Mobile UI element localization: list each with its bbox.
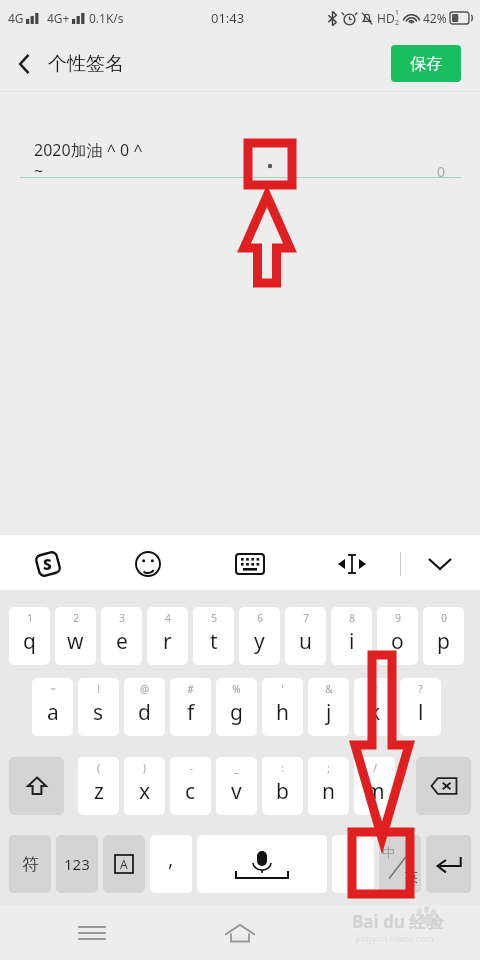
- staticText: 2: [395, 18, 400, 28]
- staticText: 0: [437, 162, 446, 181]
- button[interactable]: ': [262, 678, 303, 736]
- button[interactable]: 4: [147, 607, 188, 665]
- staticText: 1: [395, 8, 400, 18]
- staticText: /: [373, 761, 377, 775]
- button[interactable]: Chinese English toggle: [379, 835, 421, 893]
- button[interactable]: Sogou input: [30, 546, 66, 582]
- staticText: d: [138, 698, 151, 727]
- button[interactable]: !: [78, 678, 119, 736]
- button[interactable]: Keyboard layout: [232, 546, 268, 582]
- staticText: 42%: [423, 10, 447, 26]
- staticText: %: [232, 682, 241, 696]
- button[interactable]: ~: [32, 678, 73, 736]
- button[interactable]: *: [354, 678, 395, 736]
- button[interactable]: Numbers: [56, 835, 98, 893]
- staticText: #: [187, 682, 194, 696]
- staticText: z: [94, 777, 104, 806]
- button[interactable]: Emoji: [130, 546, 166, 582]
- button[interactable]: (: [78, 757, 119, 815]
- button[interactable]: _: [216, 757, 257, 815]
- staticText: (: [97, 761, 100, 775]
- button[interactable]: :: [262, 757, 303, 815]
- staticText: ~: [34, 160, 44, 182]
- staticText: 保存: [410, 54, 442, 74]
- button[interactable]: 2: [55, 607, 96, 665]
- button[interactable]: 8: [331, 607, 372, 665]
- staticText: r: [163, 627, 172, 656]
- button[interactable]: Shift: [9, 757, 64, 815]
- staticText: 9: [395, 611, 401, 625]
- button[interactable]: 5: [193, 607, 234, 665]
- staticText: _: [234, 761, 239, 775]
- staticText: p: [437, 627, 450, 656]
- button[interactable]: Move cursor: [334, 546, 370, 582]
- staticText: i: [349, 627, 355, 656]
- button[interactable]: 9: [377, 607, 418, 665]
- staticText: 6: [257, 611, 263, 625]
- staticText: k: [369, 698, 381, 727]
- staticText: 符: [22, 854, 39, 875]
- button[interactable]: 保存: [391, 45, 461, 82]
- staticText: e: [116, 627, 128, 656]
- button[interactable]: /: [354, 757, 395, 815]
- button[interactable]: 6: [239, 607, 280, 665]
- button[interactable]: Home: [220, 913, 260, 953]
- button[interactable]: Period: [332, 835, 374, 893]
- button[interactable]: 7: [285, 607, 326, 665]
- staticText: &: [325, 682, 333, 696]
- staticText: 0: [441, 611, 447, 625]
- button[interactable]: &: [308, 678, 349, 736]
- button[interactable]: @: [124, 678, 165, 736]
- staticText: A: [120, 856, 128, 872]
- button[interactable]: Back: [8, 47, 42, 81]
- staticText: q: [23, 627, 36, 656]
- staticText: 个性签名: [48, 52, 124, 76]
- staticText: ,: [168, 845, 174, 872]
- button[interactable]: ): [124, 757, 165, 815]
- button[interactable]: Hide keyboard: [422, 546, 458, 582]
- staticText: 英: [405, 868, 418, 884]
- button[interactable]: 1: [9, 607, 50, 665]
- button[interactable]: #: [170, 678, 211, 736]
- staticText: !: [97, 682, 100, 696]
- button[interactable]: Recents: [72, 913, 112, 953]
- staticText: 4G+: [47, 10, 70, 26]
- staticText: 4: [165, 611, 171, 625]
- button[interactable]: 3: [101, 607, 142, 665]
- staticText: u: [299, 627, 312, 656]
- button[interactable]: Backspace: [416, 757, 471, 815]
- staticText: 7: [303, 611, 309, 625]
- staticText: ;: [327, 761, 330, 775]
- button[interactable]: %: [216, 678, 257, 736]
- button[interactable]: Comma: [150, 835, 192, 893]
- staticText: 1: [27, 611, 33, 625]
- button[interactable]: ;: [308, 757, 349, 815]
- staticText: :: [281, 761, 284, 775]
- staticText: n: [322, 777, 335, 806]
- staticText: h: [276, 698, 289, 727]
- staticText: 2020加油 ^ 0 ^: [34, 139, 143, 161]
- button[interactable]: Enter: [426, 835, 471, 893]
- staticText: t: [210, 627, 218, 656]
- staticText: g: [230, 698, 243, 727]
- button[interactable]: 0: [423, 607, 464, 665]
- staticText: o: [391, 627, 404, 656]
- staticText: 2: [73, 611, 79, 625]
- button[interactable]: Space: [197, 835, 327, 893]
- button[interactable]: Input language: [103, 835, 145, 893]
- staticText: 中: [382, 844, 395, 860]
- staticText: Bai du 经验: [352, 910, 444, 933]
- staticText: 4G: [8, 10, 24, 26]
- staticText: jingyan.baidu.com: [356, 932, 434, 944]
- staticText: -: [189, 761, 193, 775]
- staticText: ': [281, 682, 284, 696]
- staticText: *: [372, 682, 378, 696]
- staticText: j: [326, 698, 332, 727]
- staticText: ~: [50, 682, 56, 696]
- button[interactable]: Symbols: [9, 835, 51, 893]
- staticText: 5: [211, 611, 217, 625]
- button[interactable]: -: [170, 757, 211, 815]
- staticText: 3: [119, 611, 125, 625]
- staticText: ): [143, 761, 146, 775]
- button[interactable]: ?: [400, 678, 441, 736]
